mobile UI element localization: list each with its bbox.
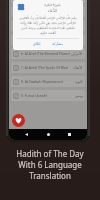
staticText: المائدة	[73, 24, 83, 28]
button[interactable]: Favourites	[12, 114, 25, 127]
staticText: بِسْمِ اللَّهِ الرَّحْمَنِ الرَّحِيمِ ال…	[17, 16, 79, 35]
staticText: 4. Al-Maidah (The Table)	[21, 23, 72, 28]
staticText: الأنعام	[74, 38, 83, 42]
staticText: يونس	[75, 94, 83, 98]
staticText: الأعراف	[71, 52, 83, 56]
button[interactable]: Recent apps	[65, 130, 74, 139]
button[interactable]: إغلاق	[30, 41, 44, 47]
staticText: 7. Al-Anfal (The Spoils Of War)	[21, 65, 72, 70]
staticText: إغلاق	[33, 42, 41, 46]
button[interactable]: مشاركة	[49, 41, 66, 47]
button[interactable]: 6. Al-A'raf (The Elevated Places)	[11, 48, 85, 59]
button[interactable]: 4. Al-Maidah (The Table)	[11, 20, 85, 31]
staticText: With 6 Language	[18, 159, 82, 170]
staticText: Hadith of The Day	[16, 148, 84, 159]
staticText: سُورَةُ البَقَرَة	[44, 3, 61, 7]
staticText: Translation	[29, 170, 71, 181]
button[interactable]: Home	[44, 130, 53, 139]
staticText: 3. An-Nisa (The Women)	[21, 9, 73, 14]
button[interactable]: 3. An-Nisa (The Women)	[11, 6, 85, 17]
staticText: 6. Al-A'raf (The Elevated Places)	[21, 51, 70, 56]
staticText: 8. At-Tawbah (Repentance)	[21, 79, 74, 84]
button[interactable]: 8. At-Tawbah (Repentance)	[11, 76, 85, 87]
staticText: الأنفال	[73, 66, 83, 70]
button[interactable]: Back	[22, 130, 31, 139]
staticText: 5. Al-An'am (The Cattle)	[21, 37, 73, 42]
button[interactable]: 5. Al-An'am (The Cattle)	[11, 34, 85, 45]
button[interactable]: 2. Al-Imran (The Family Of Imran)	[11, 0, 85, 3]
button[interactable]: 9. Yunus (Jonah)	[11, 90, 85, 101]
staticText: التوبة	[75, 80, 83, 84]
button[interactable]: 7. Al-Anfal (The Spoils Of War)	[11, 62, 85, 73]
staticText: الدُّعَاء	[48, 9, 57, 13]
staticText: مشاركة	[52, 42, 63, 46]
staticText: 9. Yunus (Jonah)	[21, 93, 74, 98]
